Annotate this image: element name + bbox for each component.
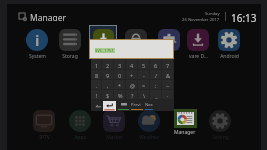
staticText: 7 [166, 62, 170, 69]
button[interactable]: 6 [150, 60, 162, 70]
button[interactable]: 1 [91, 60, 102, 70]
button[interactable]: @ [126, 80, 138, 90]
button[interactable]: ! [91, 90, 102, 100]
staticText: @ [130, 82, 135, 89]
button[interactable]: Weather [133, 110, 165, 141]
button[interactable]: Market [98, 110, 130, 141]
staticText: System [29, 53, 46, 60]
staticText: : [155, 82, 157, 89]
other: Storag [59, 29, 81, 51]
button[interactable]: Manager [169, 109, 201, 136]
staticText: SVC_17512k [95, 48, 115, 53]
staticText: 0 [118, 72, 122, 79]
button[interactable] [153, 29, 185, 60]
staticText: Android [220, 53, 239, 60]
button[interactable]: 3 [114, 60, 126, 70]
button[interactable]: Enter [103, 101, 116, 111]
staticText: $ [106, 92, 110, 99]
other: Android [218, 29, 240, 51]
button[interactable]: 2 [102, 60, 114, 70]
staticText: Manager [174, 129, 196, 136]
staticText: i [35, 30, 40, 50]
button[interactable]: & [162, 70, 174, 80]
button[interactable]: i [21, 29, 53, 60]
staticText: 4 [130, 62, 134, 69]
staticText: 2 [106, 62, 110, 69]
staticText: / [155, 72, 158, 79]
button[interactable]: Next [145, 101, 153, 110]
button[interactable]: 4 [126, 60, 138, 70]
button[interactable]: \ [138, 90, 150, 100]
staticText: Sunday [205, 11, 220, 17]
button[interactable]: 5 [138, 60, 150, 70]
staticText: & [166, 72, 171, 79]
button[interactable]: Storag [54, 29, 86, 60]
staticText: · [167, 92, 169, 99]
button[interactable]: Previous [131, 101, 143, 110]
staticText: ! [96, 92, 98, 99]
staticText: vare D... [189, 53, 208, 60]
button[interactable]: ? [126, 90, 138, 100]
button[interactable]: / [150, 70, 162, 80]
button[interactable]: vare D... [182, 29, 214, 60]
button[interactable]: 8 [91, 70, 102, 80]
staticText: 26 November 2017 [182, 17, 220, 23]
staticText: Weather [139, 134, 159, 141]
staticText: Previous [131, 102, 143, 108]
staticText: - [143, 72, 145, 79]
button[interactable]: Space [118, 101, 129, 110]
button[interactable]: - [138, 70, 150, 80]
button[interactable]: % [114, 90, 126, 100]
other [158, 29, 180, 51]
button[interactable]: + [126, 70, 138, 80]
staticText: \ [143, 92, 146, 99]
other: vare D... [187, 29, 209, 51]
button[interactable]: 7 [162, 60, 174, 70]
staticText: Manager [30, 12, 67, 21]
button[interactable]: Apps [64, 110, 96, 141]
button[interactable]: Manager app icon [19, 12, 67, 21]
staticText: ~ [166, 82, 170, 89]
staticText: Market [106, 134, 123, 141]
other: Setting [209, 110, 231, 132]
button[interactable]: 9 [102, 70, 114, 80]
staticText: 5 [142, 62, 146, 69]
staticText: 6 [154, 62, 158, 69]
staticText: Setting [212, 134, 229, 141]
staticText: , [107, 82, 109, 89]
button[interactable]: . [91, 80, 102, 90]
button[interactable]: $ [102, 90, 114, 100]
staticText: Apps [74, 134, 86, 141]
staticText: Next [145, 102, 153, 108]
other: Manager app icon [19, 13, 27, 21]
staticText: ? [131, 92, 134, 99]
button[interactable]: Shift [93, 101, 103, 111]
button[interactable]: _ [150, 90, 162, 100]
button[interactable]: = [138, 80, 150, 90]
button[interactable]: 0 [114, 70, 126, 80]
staticText: IPTV [39, 134, 50, 141]
button[interactable]: Downloads [90, 26, 116, 52]
button[interactable]: SVC_17512k [90, 40, 173, 58]
button[interactable]: Android [213, 29, 245, 60]
button[interactable]: · [162, 90, 174, 100]
staticText: 1 [95, 62, 99, 69]
other: IPTV [33, 110, 55, 132]
staticText: % [118, 92, 123, 99]
button[interactable]: ~ [162, 80, 174, 90]
button[interactable] [120, 29, 152, 60]
other: Market [103, 110, 125, 132]
staticText: = [142, 82, 146, 89]
other: Apps [69, 110, 91, 132]
button[interactable]: Setting [204, 110, 236, 141]
button[interactable]: : [150, 80, 162, 90]
other: Manager [177, 112, 194, 125]
button[interactable]: IPTV [28, 110, 60, 141]
staticText: _ [155, 92, 158, 99]
staticText: 9 [106, 72, 110, 79]
staticText: * [118, 82, 122, 89]
staticText: 3 [118, 62, 122, 69]
button[interactable]: , [102, 80, 114, 90]
button[interactable]: * [114, 80, 126, 90]
staticText: + [130, 72, 134, 79]
